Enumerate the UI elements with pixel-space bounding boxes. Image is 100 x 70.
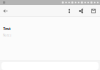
button[interactable]: Back xyxy=(0,5,11,17)
button[interactable]: More options xyxy=(63,5,75,17)
button[interactable]: Save xyxy=(87,5,100,17)
staticText: Notes xyxy=(3,34,11,37)
button[interactable]: Share xyxy=(75,5,87,17)
staticText: Test xyxy=(3,26,11,31)
